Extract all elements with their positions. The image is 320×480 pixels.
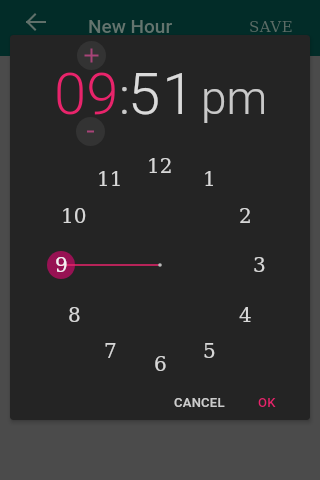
button[interactable] bbox=[12, 0, 60, 44]
button[interactable]: 10 bbox=[58, 199, 90, 231]
button[interactable]: 2 bbox=[229, 199, 261, 231]
button[interactable]: 51 bbox=[128, 60, 197, 128]
staticText: 12 bbox=[147, 154, 173, 177]
staticText: 5 bbox=[203, 339, 216, 362]
staticText: 8 bbox=[68, 303, 81, 326]
button[interactable]: SAVE bbox=[240, 8, 302, 44]
staticText: OK bbox=[258, 395, 276, 410]
staticText: 1 bbox=[203, 167, 216, 190]
staticText: 10 bbox=[61, 204, 87, 227]
staticText: New Hour bbox=[88, 15, 173, 37]
staticText: CANCEL bbox=[174, 395, 225, 410]
staticText: : bbox=[119, 66, 130, 127]
staticText: SAVE bbox=[249, 18, 294, 35]
button[interactable] bbox=[77, 41, 106, 70]
button[interactable]: 1 bbox=[193, 162, 225, 194]
button[interactable]: 09 bbox=[54, 60, 119, 128]
button[interactable]: pm bbox=[201, 71, 268, 125]
staticText: 4 bbox=[239, 303, 252, 326]
button[interactable]: CANCEL bbox=[155, 384, 243, 420]
button[interactable]: 8 bbox=[58, 298, 90, 330]
button[interactable]: 9 bbox=[45, 248, 77, 280]
button[interactable]: 4 bbox=[229, 298, 261, 330]
button[interactable]: OK bbox=[239, 384, 295, 420]
staticText: 3 bbox=[253, 253, 266, 276]
button[interactable]: 3 bbox=[243, 248, 275, 280]
staticText: 7 bbox=[104, 339, 117, 362]
button[interactable]: 12 bbox=[144, 149, 176, 181]
staticText: 2 bbox=[239, 204, 252, 227]
button[interactable] bbox=[76, 117, 105, 146]
button[interactable]: 7 bbox=[94, 334, 126, 366]
staticText: 11 bbox=[97, 167, 123, 190]
staticText: 6 bbox=[154, 352, 167, 375]
staticText: 9 bbox=[55, 253, 68, 276]
button[interactable]: 11 bbox=[94, 162, 126, 194]
button[interactable]: 6 bbox=[144, 347, 176, 379]
button[interactable]: 5 bbox=[193, 334, 225, 366]
